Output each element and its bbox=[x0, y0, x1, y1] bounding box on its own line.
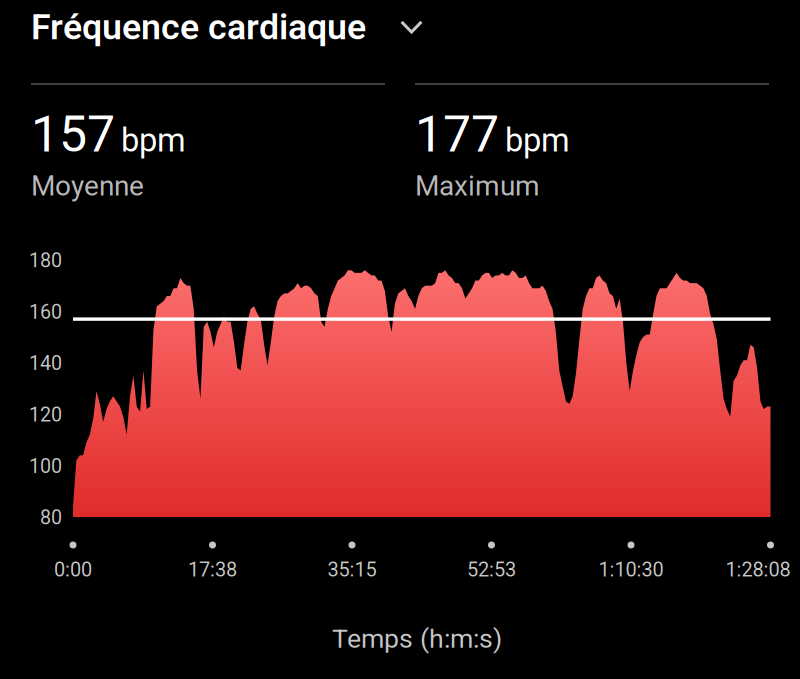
staticText: 17:38 bbox=[188, 558, 237, 581]
staticText: 100 bbox=[29, 455, 62, 478]
staticText: 180 bbox=[29, 249, 62, 272]
staticText: 52:53 bbox=[467, 558, 516, 581]
staticText: 157 bbox=[31, 105, 115, 164]
staticText: 1:10:30 bbox=[598, 558, 663, 581]
staticText: Moyenne bbox=[31, 170, 144, 202]
staticText: Maximum bbox=[415, 170, 540, 202]
staticText: Fréquence cardiaque bbox=[31, 6, 366, 48]
staticText: 140 bbox=[29, 352, 62, 375]
staticText: 120 bbox=[29, 403, 62, 426]
staticText: 80 bbox=[40, 506, 62, 529]
staticText: bpm bbox=[121, 121, 186, 159]
staticText: 0:00 bbox=[54, 558, 92, 581]
staticText: 1:28:08 bbox=[725, 558, 790, 581]
staticText: Temps (h:m:s) bbox=[332, 623, 502, 654]
staticText: 35:15 bbox=[327, 558, 376, 581]
staticText: 160 bbox=[29, 300, 62, 323]
staticText: 177 bbox=[415, 105, 499, 164]
button[interactable]: Fréquence cardiaque bbox=[0, 0, 439, 59]
staticText: bpm bbox=[505, 121, 570, 159]
